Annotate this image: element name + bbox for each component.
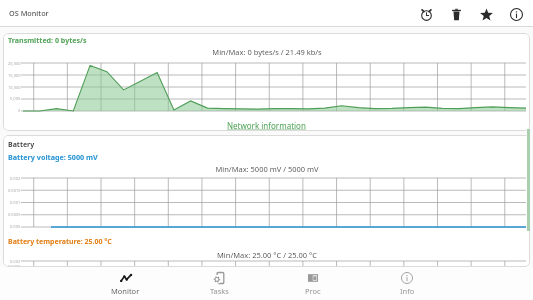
button[interactable]: Info (501, 1, 531, 27)
button[interactable]: Network information (225, 120, 308, 131)
staticText: Monitor (111, 286, 140, 296)
staticText: OS Monitor (9, 8, 49, 18)
button[interactable]: Favorite (471, 1, 501, 27)
staticText: Info (400, 286, 415, 296)
staticText: 20,000 (8, 61, 21, 66)
staticText: 10,000 (8, 85, 21, 90)
staticText: 5,000 (10, 96, 21, 101)
staticText: 0 (18, 108, 21, 113)
staticText: 0.002 (10, 176, 21, 181)
staticText: 0.0005 (8, 212, 21, 217)
staticText: 15,000 (8, 73, 21, 78)
staticText: Min/Max: 0 bytes/s / 21.49 kb/s (212, 47, 322, 57)
staticText: 0.002 (10, 259, 21, 264)
button[interactable]: Alarm (411, 1, 441, 27)
button[interactable]: Proc (266, 267, 360, 300)
staticText: Transmitted: 0 bytes/s (8, 35, 87, 45)
staticText: Battery temperature: 25.00 °C (8, 237, 112, 247)
button[interactable]: Monitor (79, 267, 172, 300)
staticText: Tasks (210, 286, 229, 296)
staticText: 0.0015 (8, 264, 21, 267)
staticText: Network information (227, 120, 306, 131)
staticText: Min/Max: 25.00 °C / 25.00 °C (217, 250, 317, 260)
staticText: Min/Max: 5000 mV / 5000 mV (215, 164, 319, 174)
button[interactable]: Delete (441, 1, 471, 27)
staticText: 0.000 (10, 224, 21, 229)
staticText: 0.0015 (8, 188, 21, 193)
button[interactable]: Tasks (172, 267, 266, 300)
button[interactable]: Info (360, 267, 454, 300)
staticText: Battery voltage: 5000 mV (8, 152, 98, 162)
staticText: 0.001 (10, 200, 21, 205)
staticText: Battery (8, 140, 35, 150)
staticText: Proc (305, 286, 321, 296)
